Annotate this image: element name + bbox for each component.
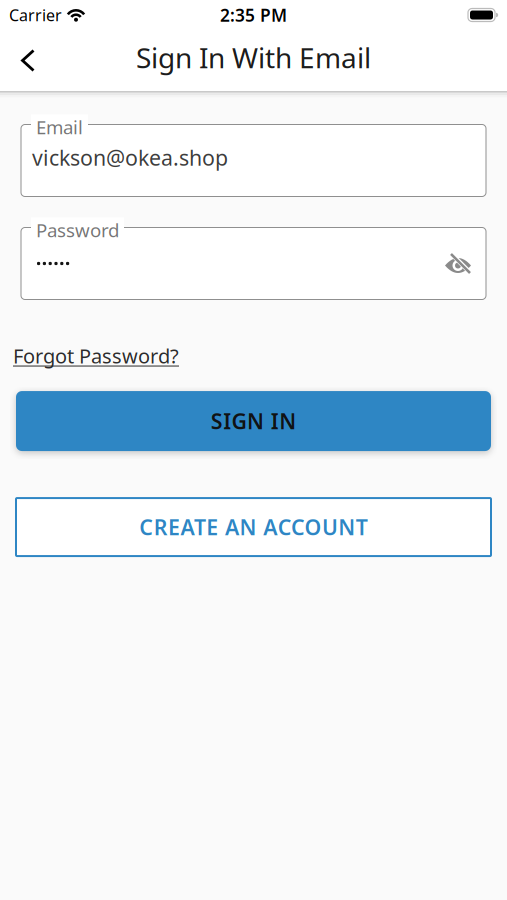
- staticText: Sign In With Email: [136, 39, 371, 76]
- button[interactable]: [0, 31, 35, 90]
- button[interactable]: Forgot Password?: [0, 299, 179, 369]
- staticText: vickson@okea.shop: [32, 143, 228, 172]
- staticText: Forgot Password?: [13, 342, 179, 369]
- button[interactable]: [444, 251, 486, 275]
- staticText: CREATE AN ACCOUNT: [139, 513, 368, 541]
- staticText: SIGN IN: [211, 407, 296, 435]
- button[interactable]: CREATE AN ACCOUNT: [16, 498, 491, 556]
- button[interactable]: SIGN IN: [16, 391, 491, 451]
- staticText: 2:35 PM: [220, 3, 287, 26]
- staticText: Carrier: [9, 4, 62, 26]
- staticText: Password: [36, 217, 119, 242]
- staticText: Email: [36, 114, 83, 139]
